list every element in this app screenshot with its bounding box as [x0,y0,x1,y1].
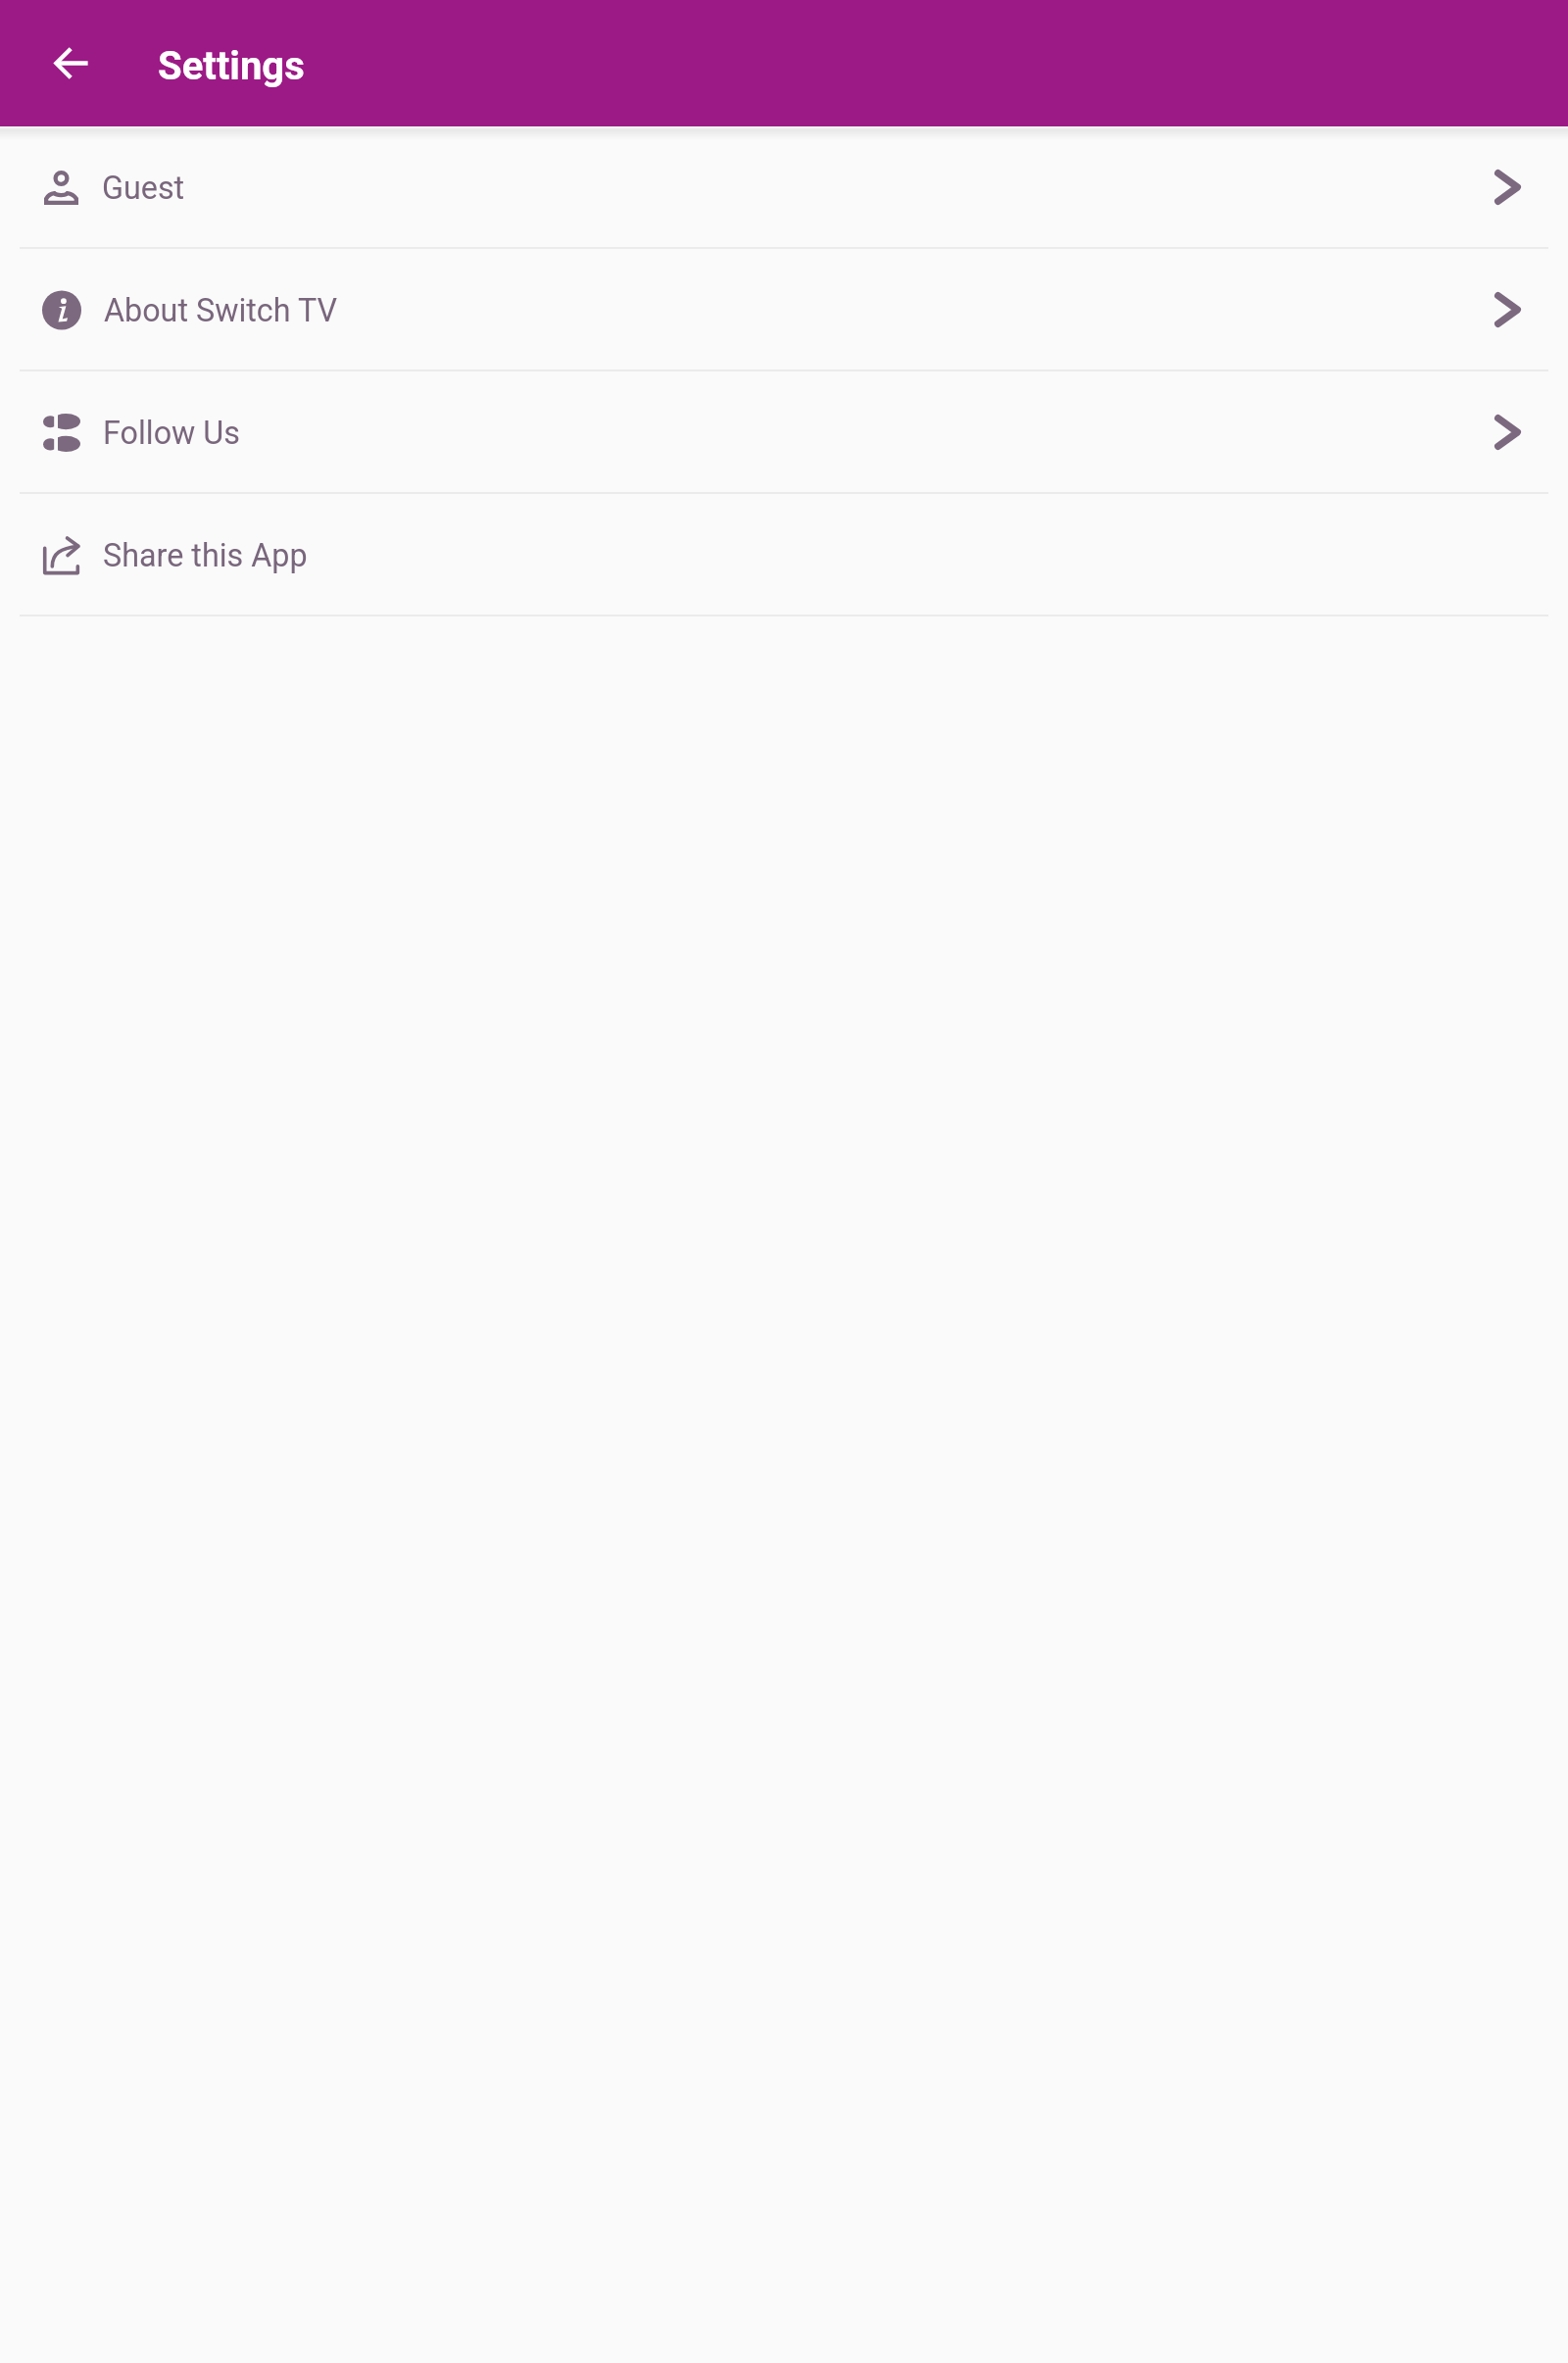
staticText: Settings [158,43,305,89]
button[interactable]: Back [51,42,93,84]
button[interactable]: Share this App [0,494,1568,615]
button[interactable]: Guest [0,126,1568,247]
button[interactable]: Follow Us [0,371,1568,492]
staticText: About Switch TV [104,292,338,329]
button[interactable]: About Switch TV [0,249,1568,369]
staticText: Guest [102,170,185,207]
staticText: Share this App [103,537,308,574]
staticText: Follow Us [103,415,240,452]
